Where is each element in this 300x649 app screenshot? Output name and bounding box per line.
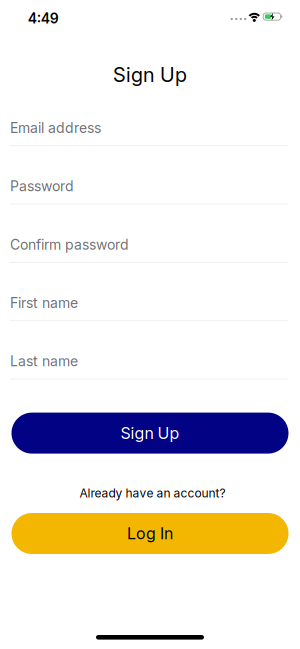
button[interactable]: Sign Up	[11, 413, 288, 454]
button[interactable]: Password	[10, 177, 290, 204]
staticText: Confirm password	[10, 236, 129, 253]
staticText: Sign Up	[113, 63, 187, 87]
staticText: Email address	[10, 120, 101, 136]
staticText: Log In	[127, 524, 173, 543]
button[interactable]: Email address	[10, 119, 290, 146]
staticText: Password	[10, 178, 74, 194]
staticText: Already have an account?	[79, 486, 225, 500]
staticText: First name	[10, 295, 78, 311]
button[interactable]: Last name	[10, 352, 290, 379]
button[interactable]: Confirm password	[10, 236, 290, 263]
staticText: Sign Up	[120, 424, 179, 443]
button[interactable]: First name	[10, 294, 290, 321]
button[interactable]: Log In	[11, 513, 288, 554]
staticText: 4:49	[28, 10, 59, 26]
staticText: Last name	[10, 353, 78, 369]
